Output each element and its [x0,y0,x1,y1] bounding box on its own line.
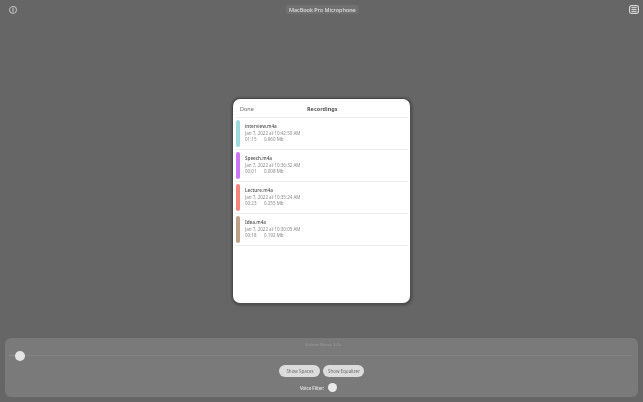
staticText: interview.m4a [245,123,277,129]
button[interactable]: MacBook Pro Microphone [286,5,359,14]
staticText: Done [240,105,254,112]
staticText: Jan 7, 2022 at 10:36:32 AM [245,162,301,168]
staticText: 0.192 Mb [264,232,284,238]
staticText: Jan 7, 2022 at 10:42:50 AM [245,130,301,136]
staticText: Recordings [307,105,338,112]
staticText: Idea.m4a [245,219,266,225]
staticText: 00:18 [245,232,257,238]
staticText: Volume Boost: 3.0x [305,342,341,347]
staticText: 01:15 [245,136,257,142]
button[interactable]: Lecture.m4a [233,182,410,214]
staticText: Jan 7, 2022 at 10:35:24 AM [245,194,301,200]
button[interactable]: Show Equalizer [323,365,364,377]
staticText: Jan 7, 2022 at 10:30:05 AM [245,226,301,232]
staticText: Show Equalizer [328,368,360,374]
staticText: Speech.m4a [245,155,273,161]
button[interactable]: Recordings list [626,2,641,17]
staticText: Lecture.m4a [245,187,273,193]
staticText: MacBook Pro Microphone [289,6,356,13]
button[interactable]: Show Spaces [279,365,320,377]
button[interactable]: Speech.m4a [233,150,410,182]
button[interactable]: Done [238,103,256,114]
button[interactable]: Volume boost slider [15,351,25,361]
staticText: 0.008 Mb [264,168,284,174]
button[interactable]: Idea.m4a [233,214,410,246]
button[interactable]: Info [5,2,20,17]
button[interactable]: interview.m4a [233,118,410,150]
staticText: Show Spaces [286,368,314,374]
staticText: 0.960 Mb [264,136,284,142]
staticText: 0.255 Mb [264,200,284,206]
staticText: Voice Filter: [300,385,325,391]
button[interactable]: Voice Filter: [300,383,337,392]
staticText: 00:23 [245,200,257,206]
staticText: 00:01 [245,168,257,174]
